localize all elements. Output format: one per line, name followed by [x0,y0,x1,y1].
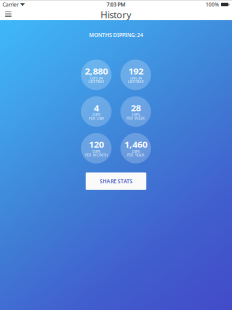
staticText: DIPS [92,112,100,117]
staticText: LIFETIME [128,79,144,84]
staticText: SHARE STATS [99,178,132,185]
staticText: History [100,9,131,21]
staticText: Carrier [2,1,18,8]
staticText: PER DAY [89,115,104,121]
staticText: 100% [205,1,219,8]
staticText: 120 [89,138,104,150]
staticText: 4 [94,101,99,114]
staticText: 2,880 [85,65,108,77]
staticText: LIFETIME [88,79,104,84]
button[interactable]: Menu [0,9,16,21]
staticText: 7:03 PM [106,1,125,8]
staticText: DIPS IN [90,75,103,81]
staticText: 28 [131,101,141,114]
staticText: MONTHS DIPPING: 24 [89,31,143,39]
staticText: PER YEAR [127,152,145,157]
staticText: DIPS [92,149,100,154]
staticText: DIPS [132,112,140,117]
staticText: PER MONTH [85,152,108,157]
staticText: 192 [128,65,143,77]
button[interactable]: SHARE STATS [86,172,146,190]
staticText: DIPS [132,149,140,154]
staticText: TINS IN [129,75,142,81]
staticText: PER WEEK [126,115,145,121]
staticText: 1,460 [124,138,147,150]
